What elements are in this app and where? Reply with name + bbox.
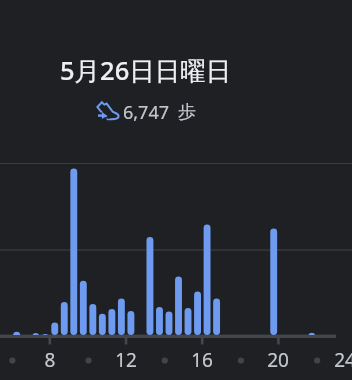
staticText: 12 [101,347,151,373]
staticText: 8 [25,347,75,373]
staticText: 歩 [178,101,196,124]
staticText: 24 [320,347,352,373]
staticText: 20 [253,347,303,373]
other: Steps [96,100,120,121]
staticText: 5月26日日曜日 [60,53,232,88]
button[interactable]: 5月26日日曜日 [0,0,352,164]
staticText: 6,747 [123,100,170,125]
staticText: 16 [177,347,227,373]
